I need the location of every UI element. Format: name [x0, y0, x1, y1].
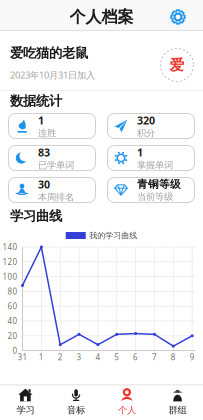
- staticText: 9: [190, 352, 195, 362]
- staticText: 30: [38, 177, 50, 191]
- staticText: 40: [7, 316, 17, 326]
- button[interactable]: 320: [107, 113, 195, 139]
- staticText: 100: [2, 271, 17, 282]
- staticText: 3: [77, 352, 82, 362]
- staticText: 本周排名: [38, 191, 74, 203]
- staticText: 4: [95, 352, 100, 362]
- staticText: 积分: [137, 127, 155, 139]
- staticText: 已学单词: [38, 159, 74, 171]
- button[interactable]: 音标: [51, 385, 101, 418]
- staticText: 2023年10月31日加入: [10, 69, 95, 81]
- button[interactable]: 设置: [170, 9, 186, 25]
- staticText: 学习: [16, 404, 34, 416]
- staticText: 1: [39, 352, 44, 362]
- staticText: 爱吃猫的老鼠: [10, 45, 88, 61]
- staticText: 120: [2, 256, 17, 267]
- staticText: 数据统计: [10, 93, 62, 109]
- button[interactable]: 1: [107, 145, 195, 171]
- button[interactable]: 群组: [153, 385, 203, 418]
- button[interactable]: 个人: [102, 385, 152, 418]
- staticText: 当前等级: [137, 191, 173, 202]
- staticText: 个人档案: [69, 7, 133, 27]
- staticText: 140: [2, 242, 17, 252]
- staticText: 320: [137, 113, 155, 127]
- staticText: 5: [114, 352, 119, 362]
- staticText: 60: [7, 301, 17, 311]
- staticText: 个人: [118, 404, 136, 416]
- staticText: 学习曲线: [10, 208, 62, 224]
- button[interactable]: 83: [8, 145, 96, 171]
- staticText: 连胜: [38, 127, 56, 139]
- staticText: 8: [171, 352, 176, 362]
- button[interactable]: 1: [8, 113, 96, 139]
- staticText: 1: [38, 113, 44, 127]
- staticText: 1: [137, 145, 143, 159]
- button[interactable]: 学习: [0, 385, 50, 418]
- button[interactable]: 30: [8, 177, 96, 203]
- staticText: 0: [12, 345, 17, 356]
- staticText: 83: [38, 145, 50, 159]
- staticText: 31: [17, 352, 27, 362]
- staticText: 青铜等级: [137, 178, 181, 191]
- staticText: 6: [133, 352, 138, 362]
- staticText: 2: [58, 352, 63, 362]
- staticText: 掌握单词: [137, 159, 173, 171]
- staticText: 群组: [169, 404, 187, 416]
- staticText: 音标: [67, 404, 85, 416]
- staticText: 我的学习曲线: [89, 231, 137, 240]
- staticText: 80: [7, 286, 17, 297]
- button[interactable]: 青铜等级: [107, 177, 195, 203]
- staticText: 7: [152, 352, 157, 362]
- staticText: 20: [7, 330, 17, 341]
- staticText: 爱: [169, 56, 184, 74]
